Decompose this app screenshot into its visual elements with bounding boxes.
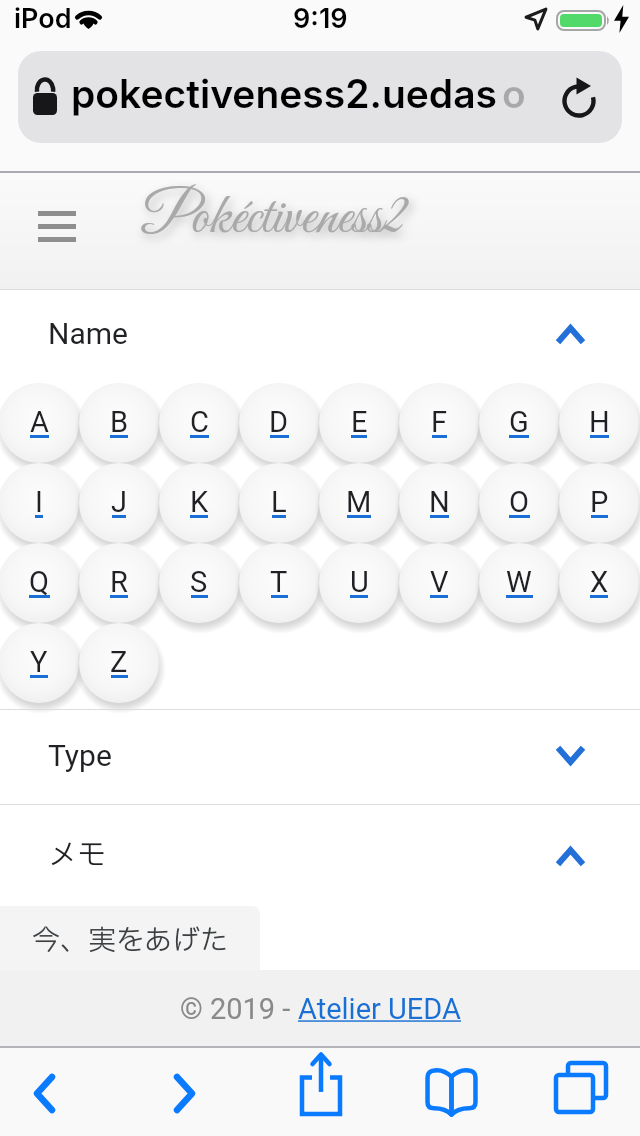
button[interactable] xyxy=(317,541,401,625)
staticText: Q xyxy=(29,565,49,599)
staticText: W xyxy=(506,565,532,599)
button[interactable]: Atelier UEDA xyxy=(298,992,461,1026)
button[interactable] xyxy=(77,621,161,705)
staticText: © 2019 - xyxy=(180,992,298,1026)
staticText: Name xyxy=(48,316,128,351)
button[interactable] xyxy=(477,381,561,465)
button[interactable] xyxy=(157,541,241,625)
button[interactable] xyxy=(77,381,161,465)
button[interactable] xyxy=(157,461,241,545)
button[interactable] xyxy=(477,541,561,625)
staticText: o xyxy=(502,70,526,117)
staticText: I xyxy=(35,485,43,519)
staticText: N xyxy=(429,485,450,519)
staticText: L xyxy=(271,485,287,519)
button[interactable] xyxy=(157,381,241,465)
staticText: U xyxy=(350,565,369,599)
button[interactable] xyxy=(558,76,602,120)
staticText: Y xyxy=(30,645,48,679)
button[interactable] xyxy=(557,461,640,545)
staticText: K xyxy=(190,485,209,519)
button[interactable] xyxy=(173,1073,196,1114)
button[interactable] xyxy=(0,621,81,705)
button[interactable] xyxy=(554,1061,608,1116)
staticText: 今、実をあげた xyxy=(32,920,229,962)
button[interactable] xyxy=(0,461,81,545)
staticText: J xyxy=(111,485,128,519)
button[interactable]: Type xyxy=(0,722,640,788)
button[interactable] xyxy=(237,381,321,465)
button[interactable] xyxy=(0,381,81,465)
staticText: B xyxy=(110,405,129,439)
staticText: メモ xyxy=(48,834,107,877)
staticText: pokectiveness2.uedas xyxy=(71,70,497,117)
staticText: D xyxy=(269,405,289,439)
staticText: Type xyxy=(48,738,112,773)
button[interactable]: メモ xyxy=(0,822,640,888)
button[interactable] xyxy=(317,461,401,545)
staticText: iPod xyxy=(14,2,72,35)
staticText: 9:19 xyxy=(293,2,348,35)
staticText: M xyxy=(346,485,372,519)
staticText: T xyxy=(270,565,288,599)
button[interactable] xyxy=(317,381,401,465)
button[interactable] xyxy=(397,461,481,545)
button[interactable] xyxy=(557,541,640,625)
staticText: F xyxy=(431,405,448,439)
staticText: A xyxy=(30,405,49,439)
button[interactable] xyxy=(397,541,481,625)
staticText: R xyxy=(110,565,128,599)
button[interactable] xyxy=(299,1051,343,1117)
staticText: H xyxy=(589,405,610,439)
staticText: G xyxy=(509,405,529,439)
button[interactable]: pokectiveness2.uedas xyxy=(18,51,622,143)
staticText: V xyxy=(430,565,449,599)
button[interactable] xyxy=(33,1073,56,1114)
staticText: O xyxy=(509,485,529,519)
button[interactable] xyxy=(77,461,161,545)
button[interactable]: Name xyxy=(0,300,640,366)
button[interactable] xyxy=(38,211,76,242)
button[interactable] xyxy=(237,461,321,545)
staticText: E xyxy=(351,405,368,439)
button[interactable]: Pokéctiveness2 xyxy=(141,183,406,256)
staticText: C xyxy=(190,405,209,439)
button[interactable] xyxy=(426,1068,477,1116)
button[interactable] xyxy=(397,381,481,465)
button[interactable] xyxy=(237,541,321,625)
staticText: S xyxy=(190,565,208,599)
button[interactable] xyxy=(0,541,81,625)
staticText: X xyxy=(590,565,609,599)
button[interactable] xyxy=(477,461,561,545)
button[interactable] xyxy=(77,541,161,625)
button[interactable] xyxy=(557,381,640,465)
staticText: P xyxy=(590,485,609,519)
staticText: Z xyxy=(110,645,128,679)
